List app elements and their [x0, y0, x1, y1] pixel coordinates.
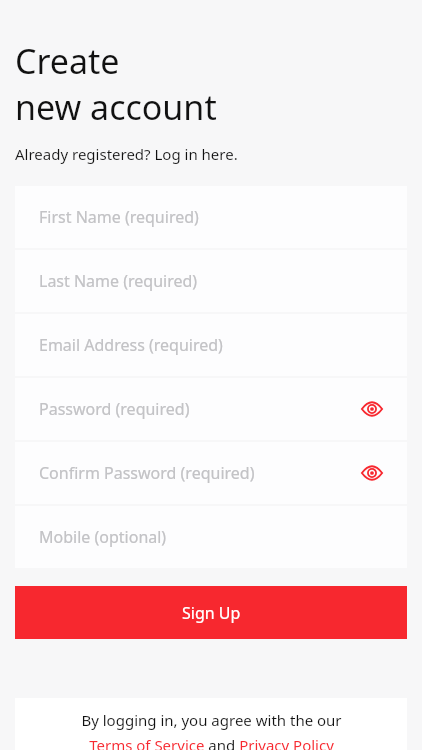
staticText: Email Address (required): [39, 334, 223, 356]
button[interactable]: Show password: [355, 392, 389, 426]
button[interactable]: Show password: [355, 456, 389, 490]
staticText: Password (required): [39, 398, 190, 420]
button[interactable]: Last Name (required): [15, 250, 407, 312]
staticText: Create: [15, 38, 120, 84]
button[interactable]: Mobile (optional): [15, 506, 407, 568]
staticText: By logging in, you agree with the our: [81, 710, 342, 730]
staticText: Mobile (optional): [39, 526, 167, 548]
staticText: Sign Up: [182, 602, 241, 624]
button[interactable]: First Name (required): [15, 186, 407, 248]
staticText: First Name (required): [39, 206, 199, 228]
staticText: Already registered? Log in here.: [15, 144, 238, 164]
button[interactable]: Sign Up: [15, 586, 407, 639]
button[interactable]: Already registered? Log in here.: [15, 144, 238, 164]
button[interactable]: Confirm Password (required): [15, 442, 407, 504]
button[interactable]: Email Address (required): [15, 314, 407, 376]
button[interactable]: Terms of Service and Privacy Policy: [89, 735, 334, 750]
staticText: new account: [15, 84, 217, 130]
staticText: Last Name (required): [39, 270, 198, 292]
button[interactable]: Password (required): [15, 378, 407, 440]
staticText: Terms of Service and Privacy Policy: [89, 735, 334, 750]
staticText: Confirm Password (required): [39, 462, 255, 484]
